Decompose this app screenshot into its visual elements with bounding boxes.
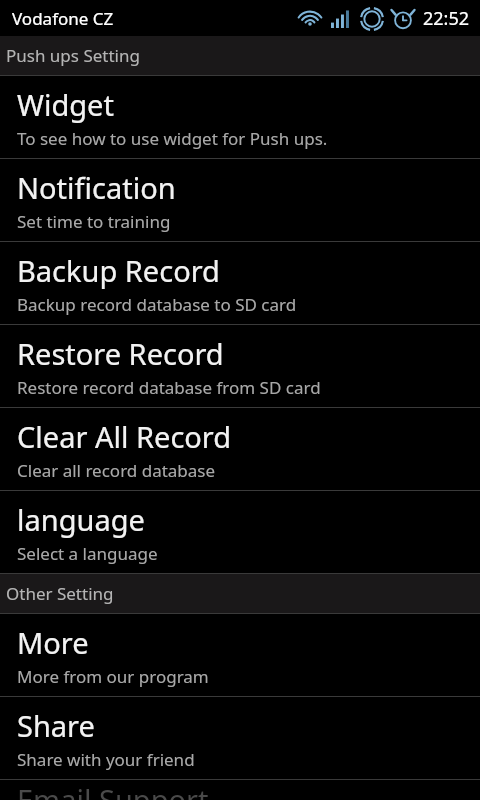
staticText: To see how to use widget for Push ups. [17, 127, 328, 150]
staticText: Set time to training [17, 210, 171, 233]
button[interactable]: Clear All Record [0, 408, 480, 490]
button[interactable]: More [0, 614, 480, 696]
staticText: Email Support [17, 780, 209, 800]
button[interactable]: Restore Record [0, 325, 480, 407]
staticText: language [17, 500, 145, 539]
button[interactable]: Share [0, 697, 480, 779]
staticText: More [17, 623, 89, 662]
button[interactable]: Email Support [0, 780, 480, 800]
staticText: Share with your friend [17, 748, 195, 771]
button[interactable]: Widget [0, 76, 480, 158]
staticText: Clear All Record [17, 417, 232, 456]
staticText: Share [17, 706, 95, 745]
staticText: Other Setting [6, 582, 114, 605]
staticText: Vodafone CZ [12, 7, 114, 30]
staticText: Restore record database from SD card [17, 376, 321, 399]
staticText: Select a language [17, 542, 158, 565]
staticText: Backup record database to SD card [17, 293, 297, 316]
staticText: Backup Record [17, 251, 220, 290]
staticText: More from our program [17, 665, 209, 688]
staticText: Restore Record [17, 334, 224, 373]
staticText: Widget [17, 85, 114, 124]
staticText: Push ups Setting [6, 44, 140, 67]
staticText: Clear all record database [17, 459, 216, 482]
button[interactable]: Backup Record [0, 242, 480, 324]
staticText: 22:52 [423, 6, 470, 31]
button[interactable]: language [0, 491, 480, 573]
button[interactable]: Notification [0, 159, 480, 241]
staticText: Notification [17, 168, 176, 207]
